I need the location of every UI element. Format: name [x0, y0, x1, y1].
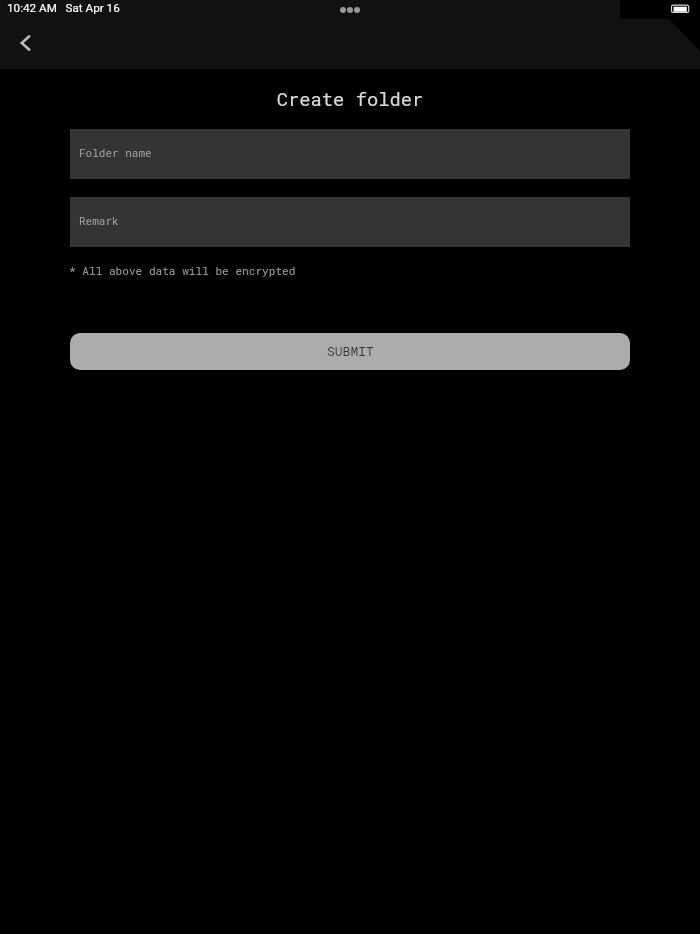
- button[interactable]: Remark: [70, 197, 630, 247]
- staticText: Folder name: [79, 145, 152, 160]
- staticText: 10:42 AM Sat Apr 16: [7, 1, 120, 15]
- button[interactable]: SUBMIT: [70, 333, 630, 370]
- staticText: * All above data will be encrypted: [69, 263, 296, 278]
- staticText: Create folder: [0, 86, 700, 111]
- staticText: Remark: [79, 213, 119, 228]
- button[interactable]: Back: [9, 27, 41, 59]
- staticText: SUBMIT: [327, 342, 374, 359]
- button[interactable]: Folder name: [70, 129, 630, 179]
